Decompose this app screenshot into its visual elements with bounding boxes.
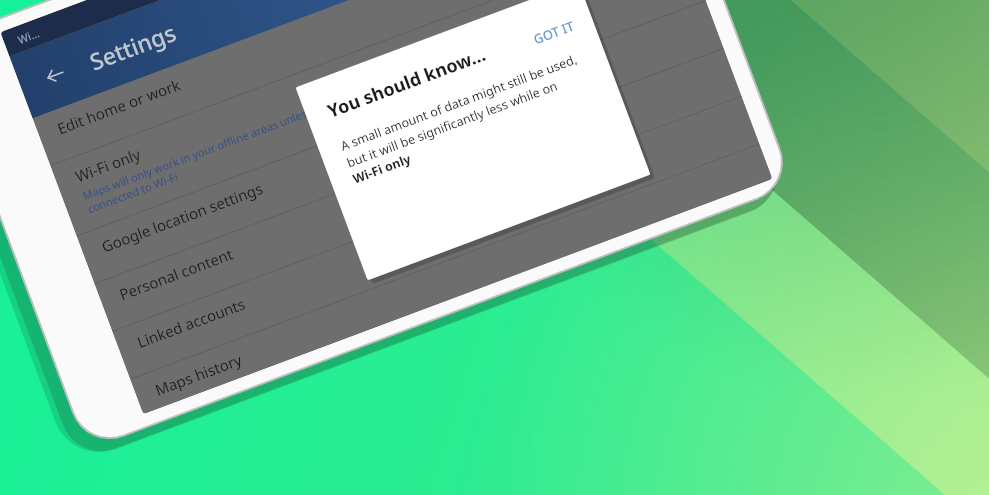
button[interactable]: Back (29, 49, 80, 101)
staticText: Edit home or work (54, 74, 183, 139)
staticText: Wi-Fi only (350, 150, 413, 187)
staticText: GOT IT (531, 17, 576, 48)
button[interactable]: Personal content (94, 49, 741, 331)
button[interactable]: GOT IT (517, 5, 590, 60)
button[interactable]: Wi-Fi only (50, 0, 706, 235)
staticText: Maps history (152, 349, 244, 400)
staticText: A small amount of data might still be us… (338, 51, 586, 171)
staticText: Maps will only work in your offline area… (80, 84, 371, 216)
button[interactable]: Linked accounts (112, 97, 759, 379)
button[interactable]: Maps history (130, 144, 773, 414)
staticText: Settings (85, 16, 180, 77)
button[interactable]: Edit home or work (32, 0, 679, 165)
staticText: Wi-Fi only (72, 143, 144, 186)
button[interactable]: Google location settings (77, 1, 724, 283)
staticText: You should know… (324, 42, 489, 124)
staticText: Linked accounts (134, 293, 248, 352)
staticText: Wi… (15, 25, 41, 47)
staticText: Personal content (116, 243, 236, 304)
staticText: Google location settings (98, 178, 266, 256)
